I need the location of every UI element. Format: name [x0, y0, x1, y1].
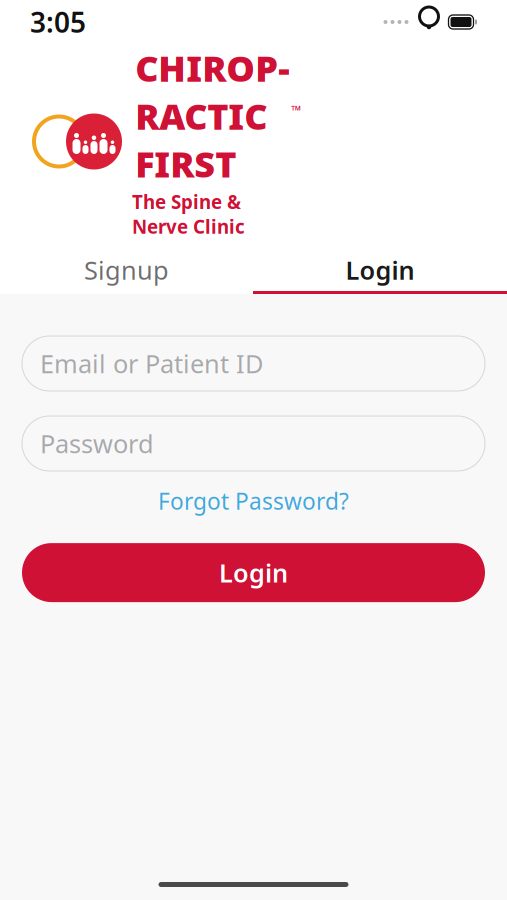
- button[interactable]: Forgot Password?: [148, 479, 359, 523]
- staticText: CHIROPRACTIC FIRST: [135, 44, 289, 187]
- staticText: Login: [345, 253, 414, 287]
- staticText: 3:05: [30, 3, 86, 41]
- button[interactable]: Login: [22, 543, 485, 602]
- staticText: Email or Patient ID: [40, 347, 263, 380]
- staticText: ™: [291, 101, 301, 119]
- staticText: Forgot Password?: [158, 486, 349, 516]
- staticText: Password: [40, 427, 154, 460]
- staticText: Login: [219, 556, 288, 589]
- staticText: The Spine & Nerve Clinic: [132, 189, 245, 239]
- staticText: Signup: [84, 253, 169, 287]
- button[interactable]: Login: [253, 249, 507, 291]
- button[interactable]: Signup: [0, 249, 253, 291]
